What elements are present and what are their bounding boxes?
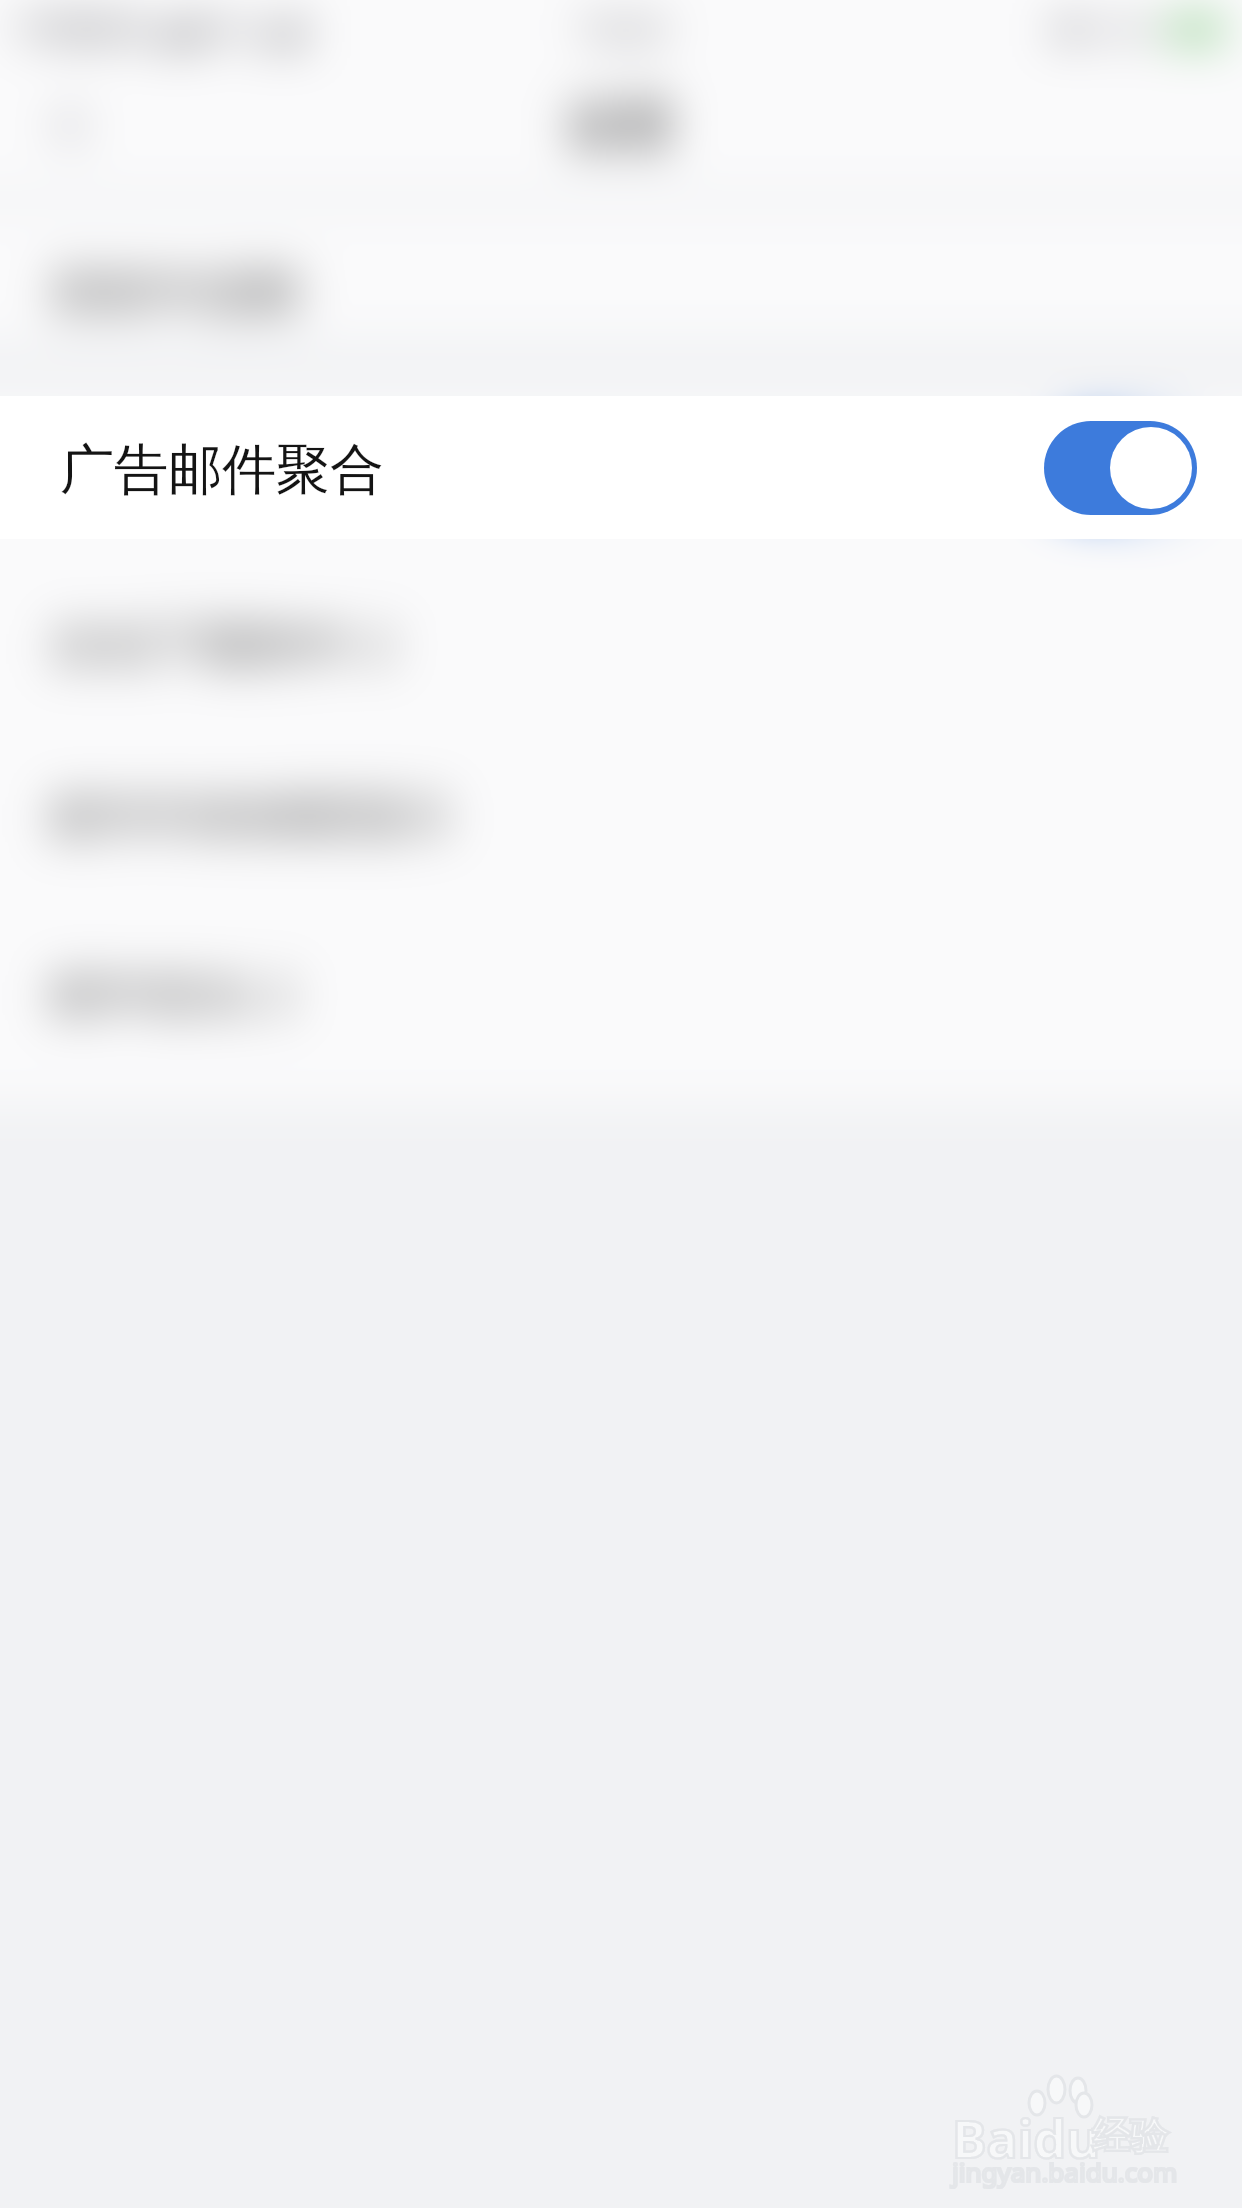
staticText: 邮件签名 2 (52, 959, 294, 1027)
staticText: jingyan.baidu.com (952, 2154, 1178, 2189)
staticText: Baidu (952, 2102, 1100, 2173)
staticText: 广告邮件聚合 (52, 436, 352, 499)
button[interactable]: 广告邮件聚合开关 (1044, 421, 1197, 515)
staticText: 邮件列表摘要显示 (52, 786, 452, 849)
staticText: 新邮件提醒 (52, 261, 302, 324)
button[interactable]: 广告邮件聚合 (0, 396, 1242, 539)
staticText: 自动下载附件 2 (52, 609, 394, 677)
staticText: jingyan.baidu.com (952, 2154, 1178, 2189)
staticText: Baidu (952, 2102, 1100, 2173)
staticText: 中国移动 (16, 8, 152, 51)
staticText: 经验 (1092, 2112, 1168, 2160)
staticText: 设置 (567, 92, 675, 160)
staticText: 广告邮件聚合 (60, 436, 384, 504)
staticText: 经验 (1092, 2112, 1168, 2160)
